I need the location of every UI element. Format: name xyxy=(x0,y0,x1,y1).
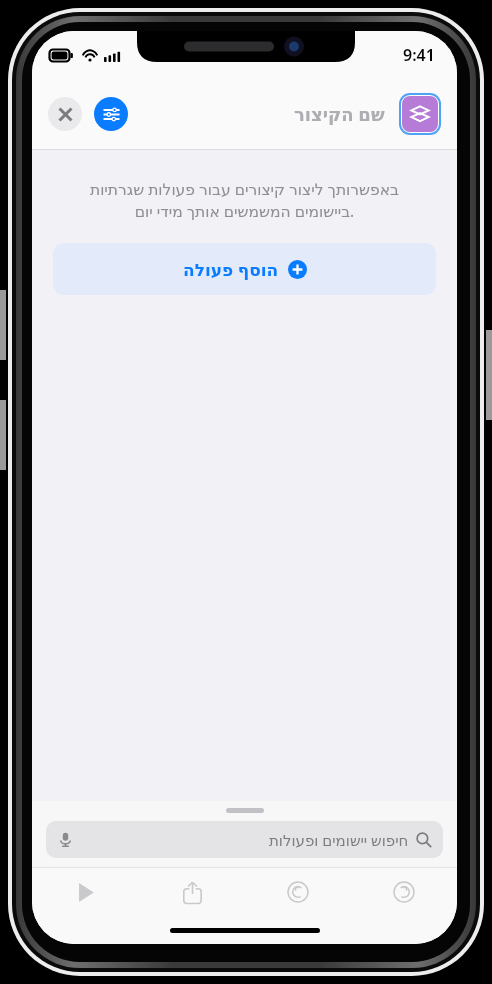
button[interactable]: הוסף פעולה xyxy=(53,243,436,295)
staticText: הוסף פעולה xyxy=(183,258,279,281)
button[interactable]: Run shortcut xyxy=(32,868,139,916)
staticText: שם הקיצור xyxy=(294,102,385,127)
button[interactable]: Redo xyxy=(351,868,457,916)
staticText: 9:41 xyxy=(403,44,435,66)
staticText: חיפוש יישומים ופעולות xyxy=(269,830,409,850)
staticText: באפשרותך ליצור קיצורים עבור פעולות שגרתי… xyxy=(62,178,427,221)
button[interactable]: Shortcut icon xyxy=(402,96,438,132)
button[interactable]: Close xyxy=(48,97,82,131)
button[interactable]: Shortcut settings xyxy=(94,97,128,131)
button[interactable]: Undo xyxy=(245,868,351,916)
button[interactable]: Share xyxy=(139,868,245,916)
button[interactable]: חיפוש יישומים ופעולות xyxy=(46,821,443,858)
